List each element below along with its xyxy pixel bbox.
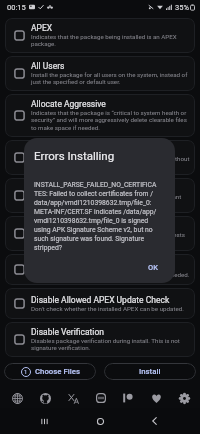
staticText: Installs the package as an instant app, … bbox=[31, 155, 190, 170]
button[interactable]: GitHub bbox=[36, 389, 54, 407]
button[interactable]: Full App bbox=[5, 178, 195, 213]
staticText: Bypasses the low target SDK version rest… bbox=[31, 271, 190, 278]
button[interactable]: Disable Allowed APEX Update Check bbox=[5, 288, 195, 319]
staticText: Grant All Permissions bbox=[31, 221, 113, 231]
staticText: Indicates that the package is “critical … bbox=[31, 109, 190, 132]
button[interactable]: Allocate Aggressive bbox=[5, 94, 195, 137]
staticText: Errors Installing bbox=[34, 149, 115, 162]
button[interactable]: Install bbox=[104, 363, 196, 380]
button[interactable]: OK bbox=[139, 260, 165, 275]
staticText: Installs the package as a full app rathe… bbox=[31, 193, 190, 208]
staticText: OK bbox=[148, 263, 158, 272]
staticText: Install the package for all users on the… bbox=[31, 71, 190, 86]
button[interactable]: Instant App bbox=[5, 140, 195, 175]
staticText: Don't check whether the installed APEX c… bbox=[31, 305, 184, 312]
staticText: Disable Allowed APEX Update Check bbox=[31, 295, 170, 305]
button[interactable]: Donate bbox=[147, 389, 165, 407]
staticText: Choose Files bbox=[35, 367, 80, 376]
button[interactable]: 1 bbox=[4, 363, 96, 380]
staticText: Disable Verification bbox=[31, 327, 104, 337]
staticText: Instant App bbox=[31, 145, 75, 155]
button[interactable]: Home bbox=[90, 411, 110, 431]
button[interactable]: Back bbox=[144, 411, 164, 431]
button[interactable]: Recents bbox=[34, 411, 54, 431]
button[interactable]: Mastodon bbox=[92, 389, 110, 407]
button[interactable]: All Users bbox=[5, 56, 195, 91]
staticText: 35% bbox=[175, 3, 189, 12]
button[interactable]: Bypass Low Target SDK Block bbox=[5, 254, 195, 285]
button[interactable]: Website bbox=[8, 389, 26, 407]
button[interactable]: Translate bbox=[64, 389, 82, 407]
staticText: All Users bbox=[31, 61, 65, 71]
staticText: Grant all runtime permissions that the p… bbox=[31, 231, 190, 246]
staticText: 1 bbox=[24, 369, 28, 376]
staticText: INSTALL_PARSE_FAILED_NO_CERTIFICATES: Fa… bbox=[34, 181, 158, 252]
staticText: 00:15 bbox=[7, 3, 26, 12]
staticText: Install bbox=[139, 367, 161, 376]
button[interactable]: Patreon bbox=[119, 389, 137, 407]
staticText: Indicates that the package being install… bbox=[31, 33, 190, 48]
staticText: Allocate Aggressive bbox=[31, 99, 106, 109]
staticText: APEX bbox=[31, 23, 53, 33]
staticText: Full App bbox=[31, 183, 62, 193]
button[interactable]: APEX bbox=[5, 18, 195, 53]
button[interactable]: Settings bbox=[175, 389, 193, 407]
button[interactable]: Disable Verification bbox=[5, 322, 195, 357]
button[interactable]: Grant All Permissions bbox=[5, 216, 195, 251]
staticText: Disables package verification during ins… bbox=[31, 337, 190, 352]
